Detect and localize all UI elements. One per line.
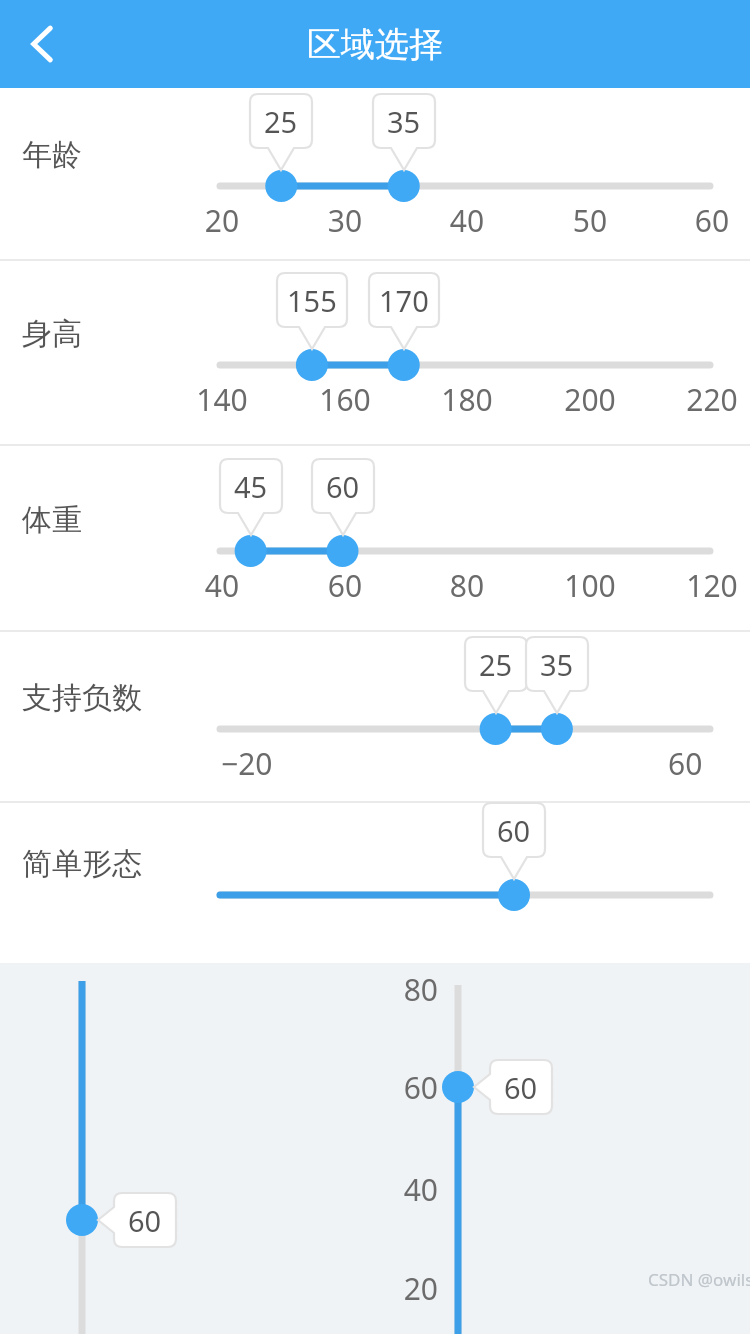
staticText: 50 [545,200,635,241]
staticText: 区域选择 [307,23,443,66]
staticText: 60 [504,1068,538,1107]
staticText: 20 [177,200,267,241]
staticText: 180 [422,379,512,420]
staticText: 40 [368,1169,438,1210]
staticText: CSDN @owilson [648,1268,750,1291]
staticText: 80 [422,565,512,606]
staticText: 60 [128,1201,162,1240]
staticText: 25 [264,102,298,141]
staticText: 60 [667,200,750,241]
staticText: 140 [177,379,267,420]
staticText: 35 [540,645,574,684]
staticText: 40 [422,200,512,241]
staticText: 60 [300,565,390,606]
button[interactable]: 60 [98,1193,176,1247]
staticText: 25 [479,645,513,684]
staticText: 60 [497,811,531,850]
staticText: 155 [287,281,337,320]
staticText: 40 [177,565,267,606]
button[interactable]: 简单形态 [0,803,750,963]
staticText: 35 [387,102,421,141]
staticText: 170 [379,281,429,320]
button[interactable]: 身高 [0,261,750,446]
staticText: 体重 [22,501,82,539]
staticText: 20 [368,1268,438,1309]
staticText: 简单形态 [22,845,142,883]
button[interactable]: 60 [474,1060,552,1114]
button[interactable]: Back [6,0,78,88]
staticText: 100 [545,565,635,606]
staticText: 支持负数 [22,679,142,717]
staticText: 160 [300,379,390,420]
button[interactable]: 年龄 [0,88,750,261]
staticText: 60 [668,743,703,784]
staticText: 80 [368,969,438,1010]
staticText: 120 [667,565,750,606]
button[interactable]: 支持负数 [0,632,750,803]
staticText: 45 [234,467,268,506]
staticText: 60 [326,467,360,506]
staticText: 220 [667,379,750,420]
staticText: 60 [368,1067,438,1108]
staticText: 年龄 [22,136,82,174]
staticText: 身高 [22,315,82,353]
staticText: −20 [221,743,273,784]
button[interactable]: 体重 [0,446,750,632]
staticText: 30 [300,200,390,241]
staticText: 200 [545,379,635,420]
